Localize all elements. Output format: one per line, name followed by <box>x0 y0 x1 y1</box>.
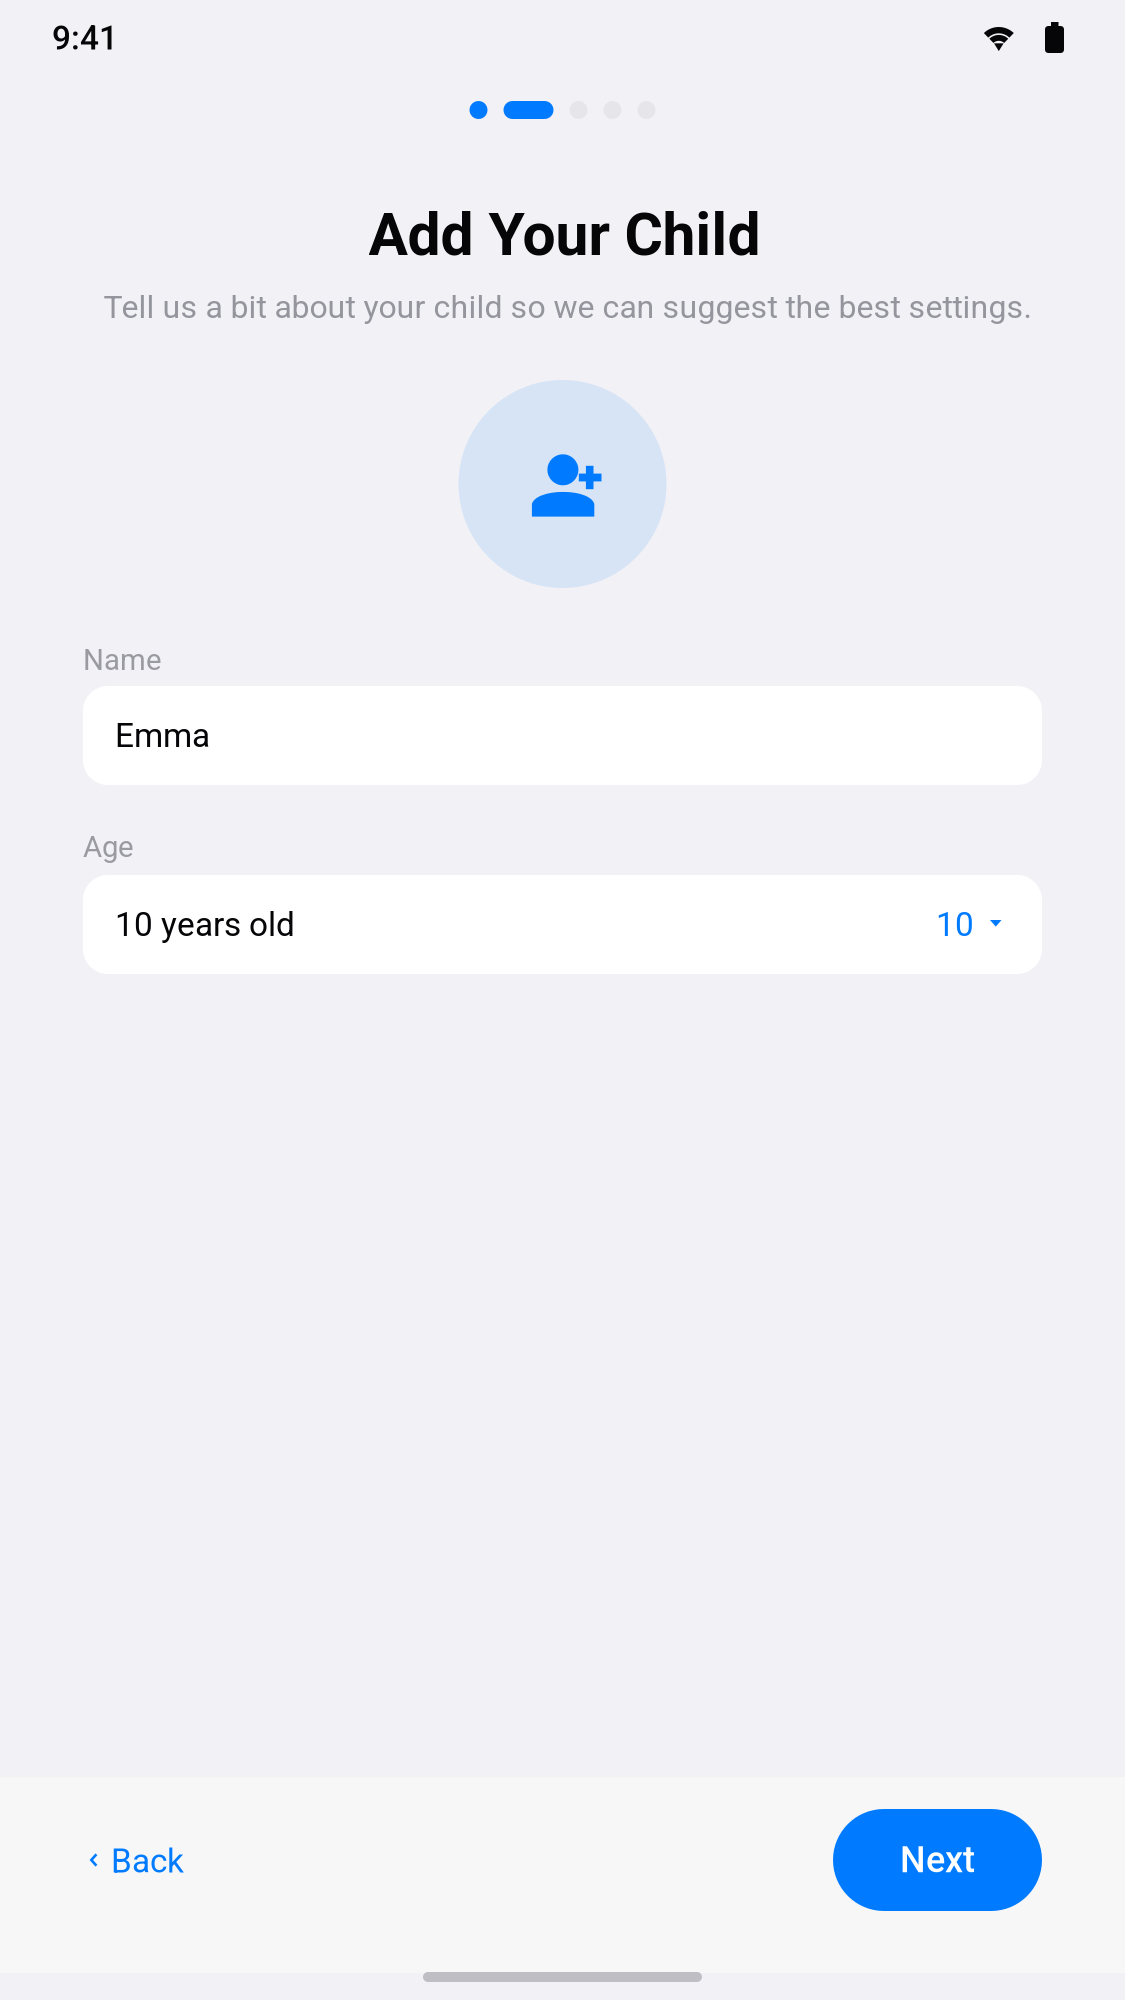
button[interactable]: Step 3 <box>569 101 587 119</box>
staticText: 10 <box>936 905 974 944</box>
button[interactable]: Add child photo <box>458 380 666 588</box>
staticText: Name <box>83 643 162 677</box>
staticText: Next <box>900 1839 975 1881</box>
button[interactable]: Step 5 <box>637 101 655 119</box>
staticText: Age <box>83 830 134 864</box>
button[interactable]: 10 years old <box>83 875 1042 974</box>
staticText: 10 years old <box>115 905 295 944</box>
button[interactable]: Emma <box>83 686 1042 785</box>
button[interactable]: Next <box>833 1809 1042 1911</box>
button[interactable]: Step 2 of 5, current <box>503 101 553 119</box>
button[interactable]: Step 1, completed <box>469 101 487 119</box>
staticText: Tell us a bit about your child so we can… <box>103 288 1031 326</box>
button[interactable]: Back <box>74 1823 206 1899</box>
staticText: Back <box>111 1841 184 1881</box>
staticText: Emma <box>115 716 210 755</box>
staticText: Add Your Child <box>368 201 760 269</box>
staticText: 9:41 <box>52 18 118 58</box>
button[interactable]: Step 4 <box>603 101 621 119</box>
